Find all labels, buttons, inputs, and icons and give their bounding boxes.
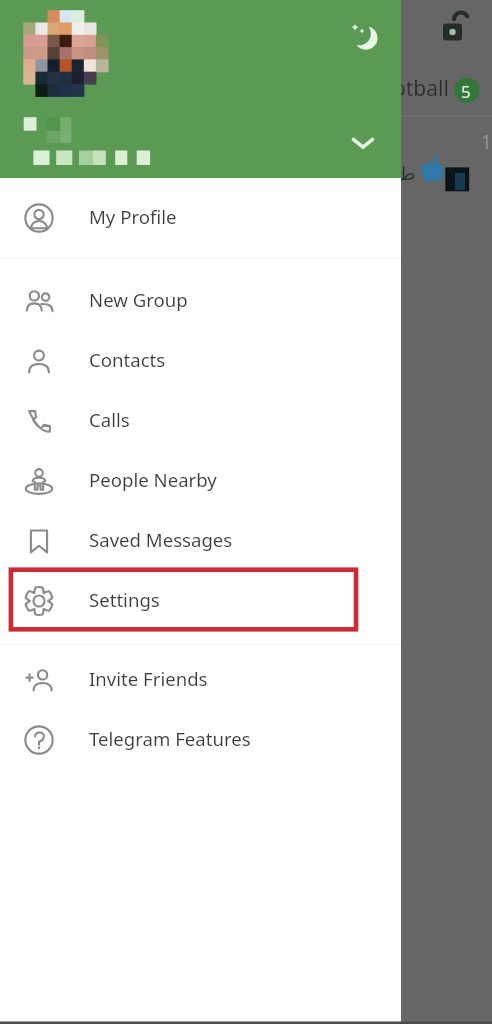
staticText: ط — [398, 162, 416, 184]
button[interactable]: Settings — [0, 571, 401, 631]
button[interactable]: Invite Friends — [0, 650, 401, 710]
button[interactable]: People Nearby — [0, 451, 401, 511]
staticText: Saved Messages — [89, 527, 233, 552]
button[interactable]: Expand accounts — [340, 120, 386, 166]
staticText: otball — [393, 74, 449, 103]
staticText: People Nearby — [89, 467, 217, 492]
button[interactable]: Calls — [0, 391, 401, 451]
staticText: My Profile — [89, 204, 177, 229]
staticText: 5 — [461, 80, 471, 103]
button[interactable]: New Group — [0, 271, 401, 331]
staticText: Telegram Features — [89, 726, 251, 751]
button[interactable]: Toggle night mode — [340, 11, 388, 59]
staticText: 1 — [481, 129, 492, 155]
staticText: Calls — [89, 407, 130, 432]
staticText: Settings — [89, 587, 160, 612]
button[interactable]: Telegram Features — [0, 710, 401, 770]
staticText: New Group — [89, 287, 188, 312]
button[interactable]: My Profile — [0, 188, 401, 248]
button[interactable]: Contacts — [0, 331, 401, 391]
button[interactable]: Saved Messages — [0, 511, 401, 571]
staticText: Contacts — [89, 347, 166, 372]
staticText: Invite Friends — [89, 666, 208, 691]
